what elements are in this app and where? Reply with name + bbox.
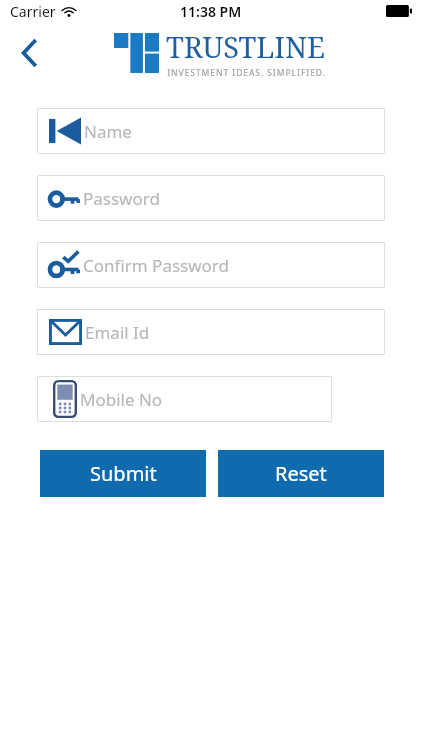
staticText: Password: [83, 187, 160, 210]
button[interactable]: Password: [37, 175, 385, 221]
staticText: Confirm Password: [83, 254, 229, 277]
button[interactable]: Mobile No: [37, 376, 332, 422]
button[interactable]: Submit: [40, 450, 206, 497]
staticText: TRUSTLINE: [166, 27, 326, 66]
staticText: INVESTMENT IDEAS. SIMPLIFIED.: [167, 67, 326, 79]
staticText: Mobile No: [80, 388, 163, 411]
button[interactable]: Confirm Password: [37, 242, 385, 288]
button[interactable]: Email Id: [37, 309, 385, 355]
staticText: Email Id: [85, 321, 150, 344]
staticText: Carrier: [10, 2, 56, 21]
staticText: 11:38 PM: [180, 2, 242, 21]
button[interactable]: Reset: [218, 450, 384, 497]
button[interactable]: Back: [8, 31, 52, 75]
staticText: Submit: [90, 460, 157, 487]
staticText: Name: [84, 120, 132, 143]
staticText: Reset: [275, 460, 327, 487]
button[interactable]: Name: [37, 108, 385, 154]
